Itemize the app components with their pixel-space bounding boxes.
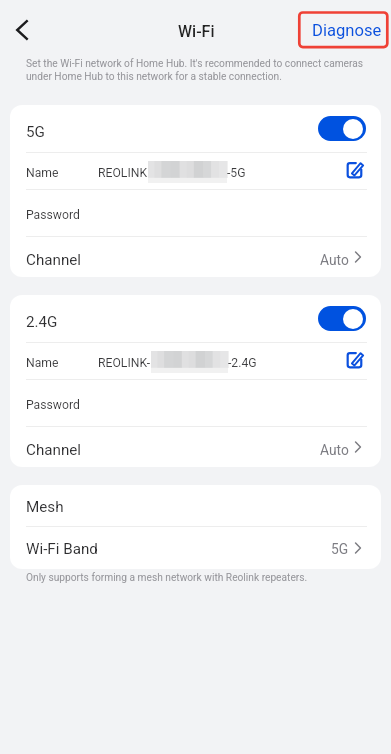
staticText: Only supports forming a mesh network wit…: [26, 572, 308, 584]
staticText: REOLINK-: [98, 356, 151, 370]
staticText: Channel: [26, 441, 82, 459]
staticText: REOLINK: [98, 166, 148, 180]
staticText: Name: [26, 166, 59, 180]
staticText: Wi-Fi: [178, 22, 215, 41]
button[interactable]: Edit Wi-Fi name: [343, 157, 367, 181]
staticText: Channel: [26, 251, 82, 269]
staticText: Auto: [320, 442, 349, 458]
button[interactable]: Channel: [10, 427, 381, 467]
staticText: 2.4G: [26, 313, 58, 331]
staticText: Mesh: [26, 498, 64, 516]
staticText: -5G: [227, 166, 246, 180]
button[interactable]: Diagnose: [300, 13, 391, 48]
staticText: Diagnose: [312, 21, 382, 40]
button[interactable]: Edit Wi-Fi name: [343, 347, 367, 371]
staticText: 5G: [26, 123, 45, 141]
staticText: Auto: [320, 252, 349, 268]
button[interactable]: Toggle band: [318, 306, 366, 331]
button[interactable]: Mesh: [10, 485, 381, 526]
staticText: -2.4G: [228, 356, 257, 370]
button[interactable]: Channel: [10, 237, 381, 277]
button[interactable]: Wi-Fi Band: [10, 527, 381, 569]
staticText: Password: [26, 208, 80, 222]
staticText: Password: [26, 398, 80, 412]
staticText: Name: [26, 356, 59, 370]
button[interactable]: Toggle band: [318, 116, 366, 141]
staticText: Wi-Fi Band: [26, 540, 98, 558]
staticText: Set the Wi-Fi network of Home Hub. It's …: [26, 58, 373, 82]
button[interactable]: Back: [1, 9, 43, 51]
staticText: 5G: [331, 541, 349, 557]
